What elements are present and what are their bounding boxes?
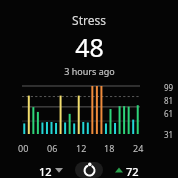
staticText: 12: [76, 142, 87, 154]
staticText: 12: [39, 164, 52, 176]
staticText: Stress: [72, 12, 106, 28]
staticText: 3 hours ago: [64, 65, 115, 77]
staticText: 48: [75, 30, 104, 64]
button[interactable]: 12: [37, 162, 65, 178]
staticText: 18: [104, 142, 115, 154]
staticText: 24: [133, 142, 144, 154]
staticText: 31: [164, 129, 174, 140]
button[interactable]: 72: [113, 162, 141, 178]
staticText: 81: [164, 95, 174, 106]
staticText: 00: [18, 142, 29, 154]
button[interactable]: Measure: [75, 162, 103, 178]
staticText: 72: [126, 164, 139, 176]
staticText: 99: [164, 82, 174, 93]
staticText: 06: [47, 142, 58, 154]
staticText: 61: [164, 108, 174, 119]
